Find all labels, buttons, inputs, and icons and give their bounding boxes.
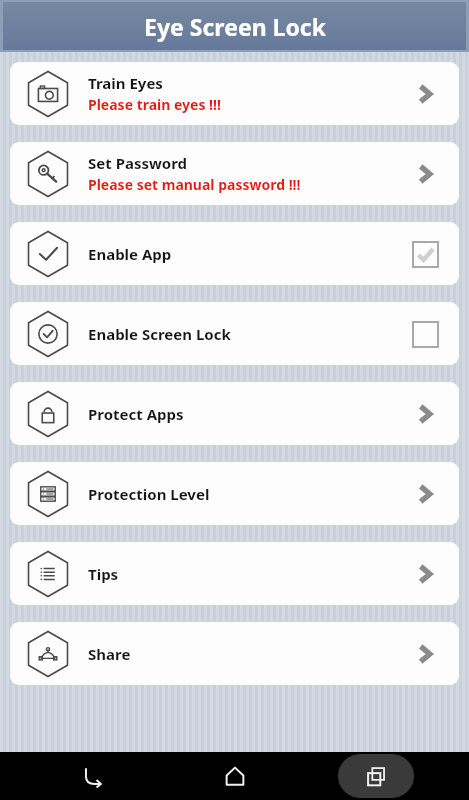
staticText: Train Eyes bbox=[88, 73, 163, 93]
button[interactable]: Set Password bbox=[10, 142, 459, 205]
staticText: Tips bbox=[88, 564, 119, 584]
button[interactable]: Protection Level bbox=[10, 462, 459, 525]
other: Open Tips bbox=[405, 554, 445, 594]
button[interactable]: Protect Apps bbox=[10, 382, 459, 445]
other: Open Share bbox=[405, 634, 445, 674]
button[interactable]: Enable Screen Lock bbox=[10, 302, 459, 365]
button[interactable]: Back bbox=[45, 752, 141, 800]
other: Open Protection Level bbox=[405, 474, 445, 514]
staticText: Protection Level bbox=[88, 484, 210, 504]
staticText: Please set manual password !!! bbox=[88, 175, 301, 194]
staticText: Enable Screen Lock bbox=[88, 324, 231, 344]
button[interactable]: Share bbox=[10, 622, 459, 685]
button[interactable]: Home bbox=[187, 752, 283, 800]
staticText: Share bbox=[88, 644, 131, 664]
button[interactable]: Enable Screen Lock checkbox bbox=[405, 314, 445, 354]
other: Open Train Eyes bbox=[405, 74, 445, 114]
other: Open Protect Apps bbox=[405, 394, 445, 434]
button[interactable]: Train Eyes bbox=[10, 62, 459, 125]
button[interactable]: Enable App bbox=[10, 222, 459, 285]
button[interactable]: Tips bbox=[10, 542, 459, 605]
staticText: Enable App bbox=[88, 244, 172, 264]
staticText: Please train eyes !!! bbox=[88, 95, 221, 114]
button[interactable]: Enable App checkbox bbox=[405, 234, 445, 274]
other: Open Set Password bbox=[405, 154, 445, 194]
staticText: Set Password bbox=[88, 153, 188, 173]
staticText: Eye Screen Lock bbox=[144, 11, 326, 42]
staticText: Protect Apps bbox=[88, 404, 184, 424]
button[interactable]: Recent apps bbox=[328, 752, 424, 800]
